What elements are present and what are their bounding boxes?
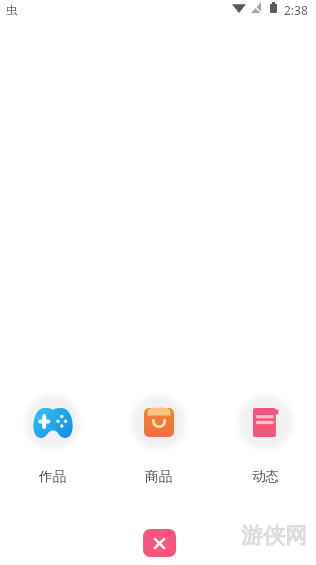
staticText: 虫 <box>6 3 18 17</box>
button[interactable]: 作品 <box>21 391 84 485</box>
staticText: 2:38 <box>284 2 308 18</box>
staticText: 游侠网 <box>241 522 307 550</box>
staticText: 作品 <box>39 468 66 485</box>
button[interactable]: 动态 <box>234 391 297 485</box>
staticText: 动态 <box>252 468 279 485</box>
staticText: 商品 <box>145 468 172 485</box>
button[interactable]: 商品 <box>127 391 190 485</box>
button[interactable]: Close <box>143 529 176 557</box>
